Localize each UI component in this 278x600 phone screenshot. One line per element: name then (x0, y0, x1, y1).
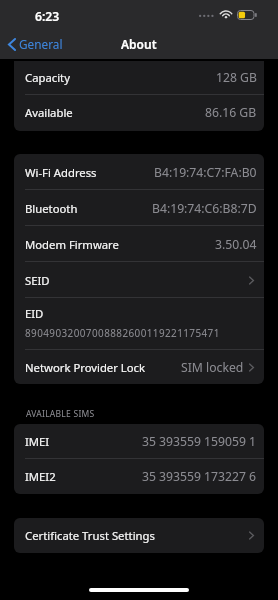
button[interactable]: Certificate Trust Settings (14, 518, 264, 553)
staticText: B4:19:74:C7:FA:B0 (154, 164, 257, 181)
button[interactable]: Bluetooth (14, 190, 264, 226)
staticText: 128 GB (216, 69, 257, 86)
button[interactable]: IMEI (14, 424, 264, 459)
staticText: 89049032007008882600119221175471 (25, 326, 220, 339)
staticText: Bluetooth (25, 201, 78, 216)
staticText: Capacity (25, 70, 70, 85)
staticText: Network Provider Lock (25, 360, 146, 375)
staticText: IMEI (25, 434, 50, 449)
staticText: 35 393559 159059 1 (142, 433, 257, 450)
staticText: 86.16 GB (205, 104, 257, 121)
button[interactable]: IMEI2 (14, 459, 264, 494)
staticText: General (19, 36, 63, 52)
staticText: Wi-Fi Address (25, 165, 97, 180)
button[interactable]: Available (14, 95, 264, 129)
staticText: EID (25, 306, 44, 321)
staticText: 35 393559 173227 6 (142, 468, 257, 485)
staticText: Modem Firmware (25, 237, 119, 252)
staticText: B4:19:74:C6:B8:7D (152, 200, 257, 217)
staticText: SIM locked (181, 359, 244, 376)
staticText: SEID (25, 273, 50, 288)
button[interactable]: Capacity (14, 61, 264, 95)
button[interactable]: Network Provider Lock (14, 350, 264, 384)
button[interactable]: Back to General (0, 32, 69, 56)
staticText: 6:23 (35, 8, 60, 25)
staticText: 3.50.04 (215, 236, 257, 253)
button[interactable]: EID (14, 298, 264, 350)
staticText: About (121, 36, 157, 52)
staticText: AVAILABLE SIMS (26, 408, 95, 420)
staticText: Certificate Trust Settings (25, 528, 155, 543)
staticText: IMEI2 (25, 469, 56, 484)
button[interactable]: Modem Firmware (14, 226, 264, 262)
button[interactable]: Wi-Fi Address (14, 154, 264, 190)
button[interactable]: SEID (14, 262, 264, 298)
staticText: Available (25, 105, 73, 120)
